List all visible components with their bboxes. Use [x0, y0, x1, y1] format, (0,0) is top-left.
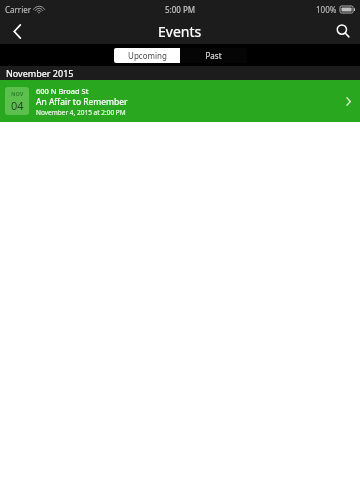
staticText: Carrier	[5, 4, 32, 15]
staticText: An Affair to Remember	[36, 96, 128, 108]
staticText: 04	[11, 98, 24, 113]
staticText: Events	[158, 22, 202, 41]
staticText: 100%	[316, 4, 337, 15]
button[interactable]: Past	[180, 48, 247, 63]
staticText: NOV	[11, 90, 24, 97]
staticText: November 4, 2015 at 2:00 PM	[36, 108, 126, 117]
button[interactable]: Back	[0, 18, 34, 44]
staticText: Upcoming	[128, 50, 167, 61]
button[interactable]: Upcoming	[114, 48, 180, 63]
staticText: 5:00 PM	[165, 4, 196, 15]
button[interactable]: NOV	[0, 80, 360, 122]
staticText: 600 N Broad St	[36, 86, 89, 96]
button[interactable]: Search	[326, 18, 360, 44]
staticText: Past	[205, 50, 222, 61]
staticText: November 2015	[6, 67, 74, 79]
